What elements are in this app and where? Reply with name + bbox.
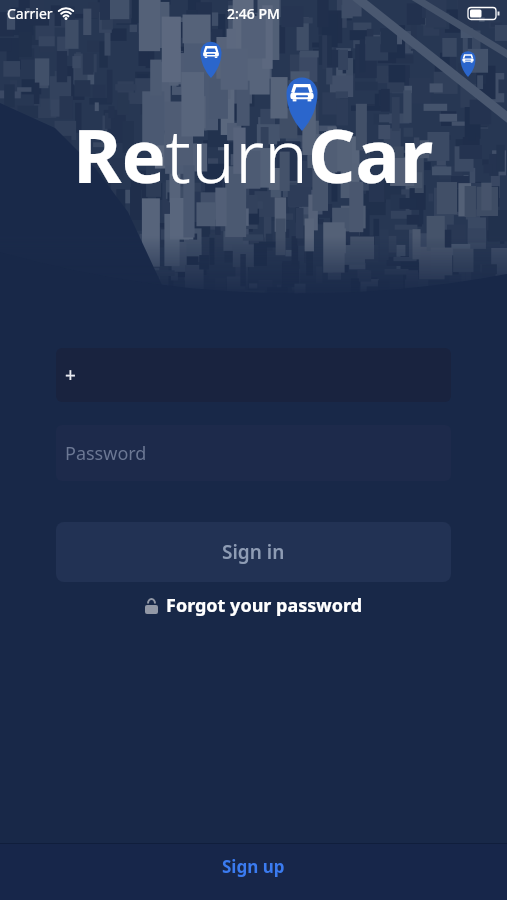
button[interactable]: + [56,348,451,402]
staticText: Forgot your password [166,593,363,618]
staticText: + [65,362,76,388]
button[interactable]: Sign in [56,522,451,582]
button[interactable]: Sign up [222,855,285,878]
button[interactable]: Password [56,425,451,481]
button[interactable]: Forgot your password [145,593,363,618]
staticText: Sign up [222,855,285,878]
staticText: 2:46 PM [227,4,280,23]
staticText: Sign in [222,539,285,565]
staticText: ReturnCar [73,104,434,205]
staticText: Password [65,441,147,466]
staticText: Carrier [7,4,53,23]
